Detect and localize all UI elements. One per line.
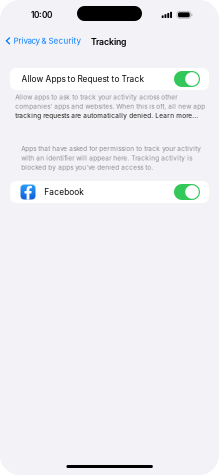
staticText: with an identifier will appear here. Tra… <box>21 154 192 162</box>
staticText: Tracking <box>91 36 126 47</box>
staticText: Allow apps to ask to track your activity… <box>15 93 177 101</box>
staticText: Apps that have asked for permission to t… <box>21 145 201 153</box>
button[interactable]: Facebook <box>10 181 209 203</box>
staticText: Allow Apps to Request to Track <box>21 74 144 84</box>
staticText: blocked by apps you've denied access to. <box>21 164 153 171</box>
staticText: Privacy & Security <box>13 36 80 46</box>
button[interactable]: Privacy & Security <box>0 33 85 49</box>
staticText: companies' apps and websites. When this … <box>15 102 205 110</box>
staticText: Facebook <box>44 187 84 197</box>
button[interactable]: Allow Apps to Request to Track <box>10 68 209 90</box>
staticText: 10:00 <box>31 10 52 20</box>
staticText: tracking requests are automatically deni… <box>15 112 198 119</box>
